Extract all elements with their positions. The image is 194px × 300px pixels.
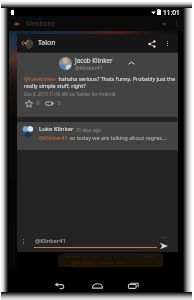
staticText: @Klinker41 [35, 237, 68, 245]
button[interactable]: Collapse [126, 58, 137, 69]
staticText: Mentions [26, 19, 55, 28]
staticText: Talon [38, 38, 56, 48]
staticText: Dec 6, 2013 11:40 AM via Twitter for And… [24, 91, 116, 97]
staticText: so today we are talking about regres... [68, 134, 167, 141]
staticText: @Klinker41 [39, 134, 68, 141]
staticText: 15 days ago [76, 127, 101, 133]
staticText: TO NEXT [142, 254, 159, 259]
staticText: Luke Klinker [39, 125, 74, 133]
button[interactable]: More options [161, 37, 174, 50]
staticText: hahaha serious? Thats funny. Probably ju… [57, 75, 176, 82]
staticText: @lukeklinker everyone, #its2 [72, 260, 126, 265]
staticText: · 0 [55, 100, 61, 107]
staticText: to mine too [66, 254, 88, 259]
staticText: Jacob Klinker [75, 56, 113, 64]
staticText: 131 [161, 235, 168, 240]
staticText: #TheBrightSide :) [72, 264, 106, 267]
button[interactable]: Share [145, 37, 158, 50]
staticText: @Klinker41 [75, 64, 103, 71]
button[interactable]: Retweet [45, 99, 54, 108]
button[interactable]: Compose options [19, 237, 28, 246]
button[interactable]: Back [52, 278, 66, 292]
staticText: really simple stuff, right? [24, 82, 86, 89]
button[interactable]: Recents [126, 278, 140, 292]
staticText: 11:01 [163, 8, 180, 16]
button[interactable]: Send [158, 240, 169, 251]
staticText: · 0 [34, 100, 40, 107]
staticText: @lukeklinker [24, 75, 57, 82]
button[interactable]: Home [90, 278, 104, 292]
button[interactable]: Favorite [24, 99, 33, 108]
button[interactable]: Navigate up [20, 36, 35, 51]
